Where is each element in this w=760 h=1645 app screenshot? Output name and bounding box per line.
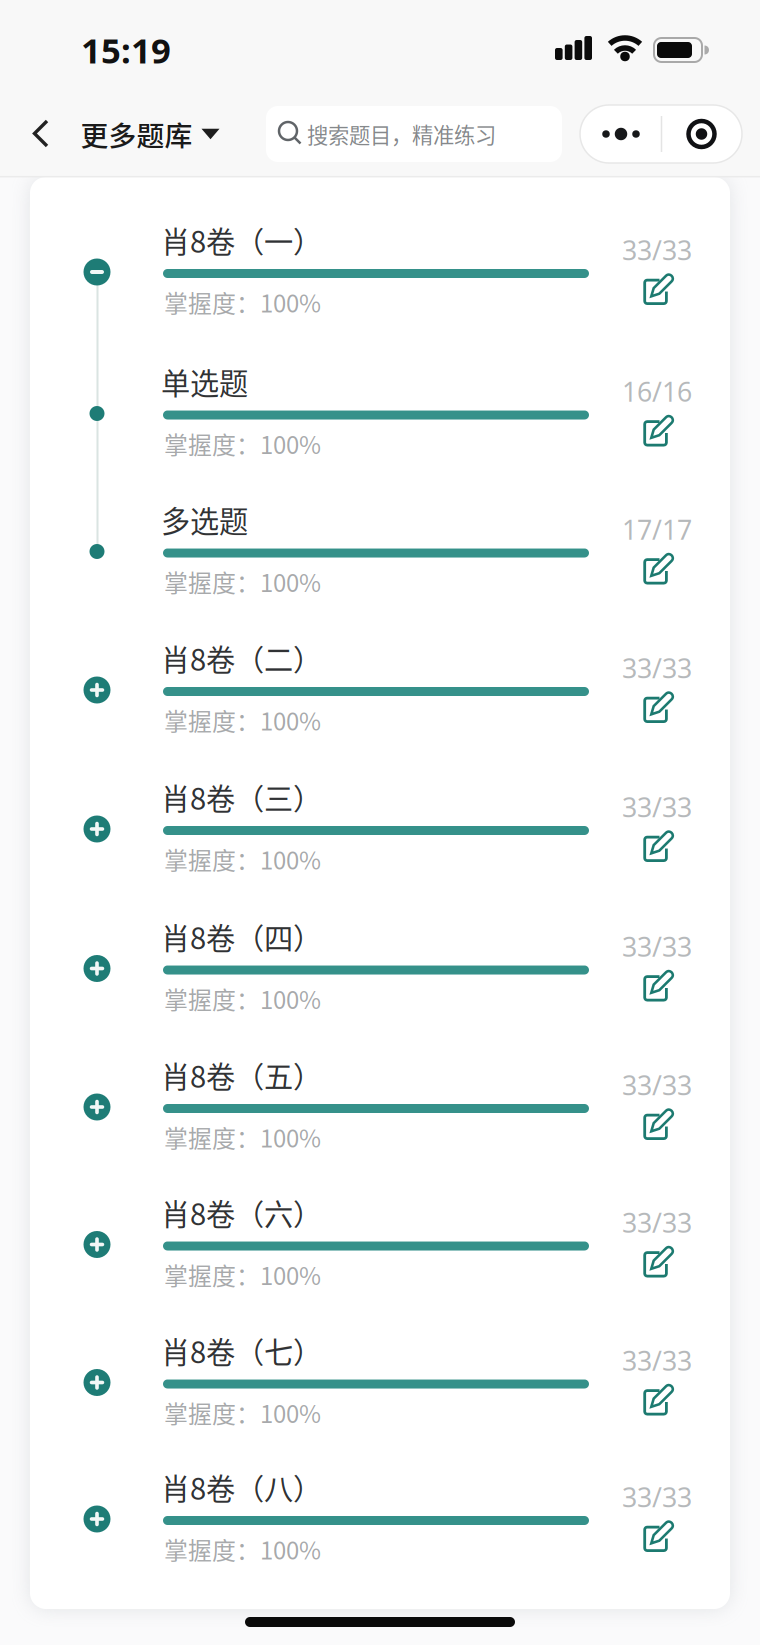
button[interactable]: 编辑 xyxy=(641,970,674,1003)
button[interactable]: 编辑 xyxy=(641,1246,674,1279)
button[interactable]: 编辑 xyxy=(641,1108,674,1141)
button[interactable]: 肖8卷（四） xyxy=(150,910,600,1022)
staticText: 肖8卷（三） xyxy=(161,776,322,818)
staticText: 33/33 xyxy=(622,232,692,268)
button[interactable]: 更多 xyxy=(580,105,661,163)
button[interactable]: 更多题库 xyxy=(80,114,219,154)
staticText: 多选题 xyxy=(161,498,248,541)
button[interactable]: 展开 xyxy=(80,1090,114,1124)
staticText: 33/33 xyxy=(622,1205,692,1240)
button[interactable]: 肖8卷（八） xyxy=(150,1461,600,1573)
button[interactable]: 肖8卷（六） xyxy=(150,1186,600,1298)
button[interactable]: 编辑 xyxy=(641,830,674,863)
staticText: 16/16 xyxy=(622,374,692,409)
staticText: 肖8卷（二） xyxy=(161,637,322,679)
staticText: 掌握度：100% xyxy=(164,1395,321,1430)
staticText: 肖8卷（四） xyxy=(161,915,322,958)
button[interactable]: 展开 xyxy=(80,1365,114,1399)
staticText: 33/33 xyxy=(622,650,692,686)
staticText: 33/33 xyxy=(622,1067,692,1103)
button[interactable]: 肖8卷（三） xyxy=(150,771,600,883)
staticText: 掌握度：100% xyxy=(164,842,321,876)
staticText: 15:19 xyxy=(81,27,171,73)
staticText: 掌握度：100% xyxy=(164,564,321,599)
staticText: 肖8卷（七） xyxy=(161,1329,322,1372)
button[interactable]: 编辑 xyxy=(641,553,674,586)
staticText: 掌握度：100% xyxy=(164,1120,321,1154)
button[interactable]: 编辑 xyxy=(641,691,674,724)
button[interactable]: 肖8卷（七） xyxy=(150,1324,600,1436)
button[interactable]: 展开 xyxy=(80,812,114,846)
staticText: 33/33 xyxy=(622,789,692,825)
button[interactable]: 展开 xyxy=(80,1502,114,1536)
staticText: 搜索题目，精准练习 xyxy=(307,119,496,149)
button[interactable]: 肖8卷（一） xyxy=(150,214,600,326)
staticText: 肖8卷（五） xyxy=(161,1054,322,1096)
staticText: 肖8卷（一） xyxy=(161,219,322,261)
staticText: 更多题库 xyxy=(80,114,192,154)
button[interactable]: 展开 xyxy=(80,951,114,985)
button[interactable]: 返回 xyxy=(27,117,55,150)
staticText: 掌握度：100% xyxy=(164,703,321,737)
staticText: 掌握度：100% xyxy=(164,426,321,461)
staticText: 肖8卷（六） xyxy=(161,1191,322,1234)
staticText: 肖8卷（八） xyxy=(161,1466,322,1508)
staticText: 33/33 xyxy=(622,929,692,964)
staticText: 掌握度：100% xyxy=(164,1257,321,1292)
staticText: 掌握度：100% xyxy=(164,1532,321,1566)
staticText: 33/33 xyxy=(622,1479,692,1515)
button[interactable]: 编辑 xyxy=(641,273,674,306)
button[interactable]: 编辑 xyxy=(641,1520,674,1553)
staticText: 单选题 xyxy=(161,360,248,403)
button[interactable]: 肖8卷（五） xyxy=(150,1049,600,1161)
staticText: 17/17 xyxy=(622,512,692,547)
button[interactable]: 肖8卷（二） xyxy=(150,632,600,744)
button[interactable]: 搜索题目，精准练习 xyxy=(266,106,562,162)
button[interactable]: 展开 xyxy=(80,673,114,707)
button[interactable]: 收起 xyxy=(80,255,114,289)
button[interactable]: 展开 xyxy=(80,1227,114,1261)
staticText: 掌握度：100% xyxy=(164,285,321,319)
button[interactable]: 多选题 xyxy=(150,493,600,605)
staticText: 33/33 xyxy=(622,1343,692,1378)
button[interactable]: 退出小程序 xyxy=(661,105,742,163)
button[interactable]: 编辑 xyxy=(641,415,674,448)
button[interactable]: 编辑 xyxy=(641,1384,674,1417)
button[interactable]: 单选题 xyxy=(150,355,600,467)
staticText: 掌握度：100% xyxy=(164,981,321,1016)
